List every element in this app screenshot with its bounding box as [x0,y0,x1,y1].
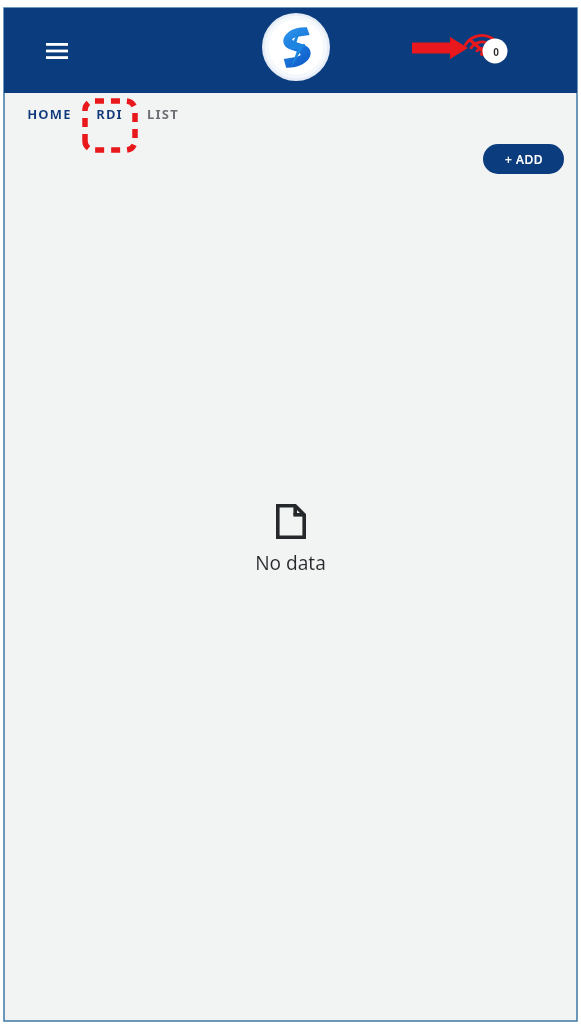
staticText: RDI [96,105,123,123]
button[interactable]: + ADD [483,144,564,174]
button[interactable]: Offline — 0 pending items [408,22,524,80]
staticText: LIST [147,105,179,123]
staticText: 0 [493,45,499,59]
staticText: + ADD [505,151,543,167]
button[interactable]: App logo [262,13,330,81]
staticText: No data [255,550,326,576]
staticText: HOME [27,105,72,123]
button[interactable]: RDI [91,98,128,130]
button[interactable]: LIST [142,98,184,130]
button[interactable]: Open navigation menu [36,30,78,72]
button[interactable]: HOME [22,98,77,130]
